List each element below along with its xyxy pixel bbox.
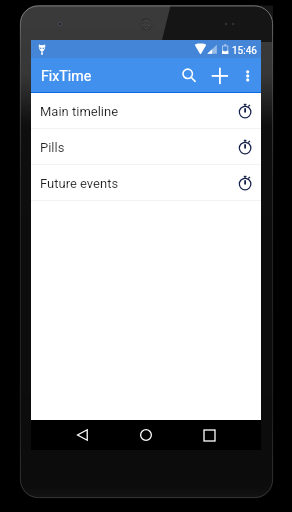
button[interactable]: Add — [202, 58, 238, 93]
staticText: FixTime — [41, 68, 92, 85]
button[interactable]: Search — [171, 58, 205, 93]
button[interactable]: Pills — [31, 129, 261, 164]
button[interactable]: Future events — [31, 165, 261, 200]
staticText: Main timeline — [40, 104, 119, 119]
button[interactable]: Recent apps — [187, 420, 231, 450]
button[interactable]: More options — [236, 58, 261, 93]
staticText: Pills — [40, 140, 65, 155]
button[interactable]: Back — [60, 420, 104, 450]
staticText: 15:46 — [232, 45, 257, 57]
button[interactable]: Main timeline — [31, 93, 261, 128]
staticText: Future events — [40, 176, 119, 191]
button[interactable]: Home — [124, 420, 168, 450]
